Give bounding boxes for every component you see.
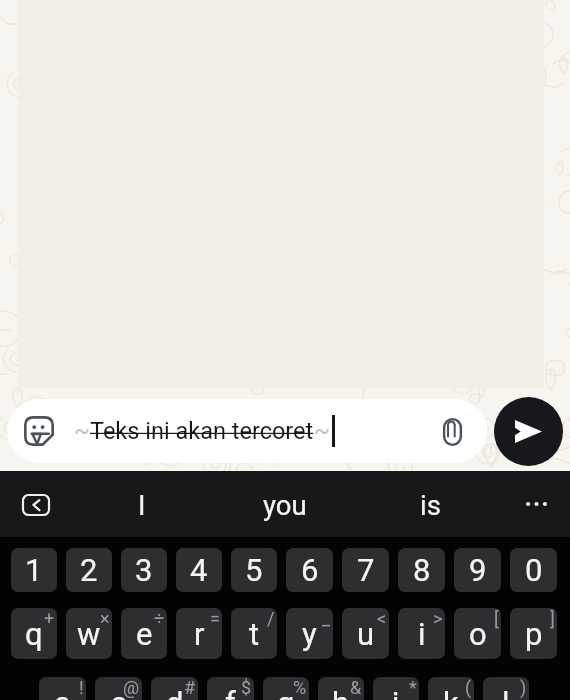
button[interactable]: _ — [286, 608, 333, 659]
button[interactable]: 6 — [286, 548, 333, 592]
staticText: + — [44, 608, 55, 629]
staticText: j — [392, 685, 400, 700]
staticText: 2 — [80, 552, 98, 588]
button[interactable]: = — [176, 608, 222, 659]
staticText: 0 — [525, 552, 543, 588]
button[interactable]: @ — [95, 677, 142, 700]
button[interactable]: 7 — [342, 548, 389, 592]
staticText: 3 — [135, 552, 153, 588]
staticText: 8 — [413, 552, 431, 588]
staticText: a — [54, 685, 71, 700]
button[interactable]: 9 — [454, 548, 501, 592]
staticText: you — [263, 489, 307, 521]
staticText: w — [77, 616, 101, 652]
staticText: * — [409, 677, 417, 698]
button[interactable]: * — [373, 677, 419, 700]
staticText: & — [350, 677, 362, 698]
button[interactable]: 1 — [11, 548, 57, 592]
button[interactable]: ÷ — [121, 608, 167, 659]
staticText: k — [443, 685, 459, 700]
staticText: × — [100, 608, 110, 629]
button[interactable]: More suggestions — [512, 471, 560, 537]
staticText: 9 — [469, 552, 487, 588]
staticText: ~ — [74, 417, 90, 445]
button[interactable]: ] — [510, 608, 557, 659]
button[interactable]: 3 — [121, 548, 167, 592]
staticText: @ — [123, 677, 140, 698]
button[interactable]: $ — [207, 677, 254, 700]
staticText: I — [138, 489, 146, 521]
staticText: 4 — [190, 552, 208, 588]
staticText: # — [184, 677, 196, 698]
staticText: e — [136, 616, 153, 652]
button[interactable]: / — [231, 608, 277, 659]
staticText: 1 — [25, 552, 43, 588]
button[interactable]: × — [66, 608, 112, 659]
button[interactable]: & — [318, 677, 364, 700]
button[interactable]: Attach — [437, 417, 467, 447]
button[interactable]: # — [151, 677, 198, 700]
staticText: ( — [465, 677, 472, 698]
staticText: 7 — [357, 552, 375, 588]
staticText: _ — [322, 608, 331, 629]
button[interactable]: > — [398, 608, 445, 659]
staticText: 6 — [301, 552, 319, 588]
button[interactable]: you — [230, 472, 340, 538]
button[interactable]: + — [11, 608, 57, 659]
staticText: h — [332, 685, 350, 700]
staticText: s — [111, 685, 127, 700]
staticText: ] — [550, 608, 555, 629]
button[interactable]: ! — [39, 677, 86, 700]
button[interactable]: Stickers — [7, 399, 487, 463]
button[interactable]: Send — [494, 397, 563, 466]
staticText: t — [249, 616, 260, 652]
staticText: o — [469, 616, 487, 652]
staticText: p — [525, 616, 543, 652]
staticText: > — [433, 608, 443, 629]
button[interactable]: ( — [428, 677, 474, 700]
staticText: [ — [494, 608, 499, 629]
button[interactable]: % — [263, 677, 309, 700]
staticText: ! — [79, 677, 84, 698]
button[interactable]: I — [87, 472, 197, 538]
staticText: % — [293, 677, 307, 698]
button[interactable]: 8 — [398, 548, 445, 592]
button[interactable]: < — [342, 608, 389, 659]
button[interactable]: 4 — [176, 548, 222, 592]
staticText: f — [225, 685, 236, 700]
staticText: q — [25, 616, 43, 652]
staticText: i — [418, 616, 426, 652]
staticText: r — [194, 616, 205, 652]
staticText: is — [420, 489, 441, 521]
staticText: ÷ — [154, 608, 165, 629]
button[interactable]: Collapse suggestions — [15, 487, 56, 523]
staticText: < — [377, 608, 387, 629]
button[interactable]: Stickers — [24, 416, 54, 446]
button[interactable]: is — [375, 472, 485, 538]
button[interactable]: 0 — [510, 548, 557, 592]
staticText: u — [357, 616, 375, 652]
staticText: Teks ini akan tercoret — [90, 417, 314, 445]
button[interactable]: 2 — [66, 548, 112, 592]
staticText: ~ — [314, 417, 330, 445]
staticText: l — [502, 685, 510, 700]
staticText: y — [302, 616, 317, 652]
staticText: / — [267, 608, 275, 629]
staticText: 5 — [245, 552, 263, 588]
staticText: g — [277, 685, 295, 700]
staticText: = — [210, 608, 220, 629]
staticText: d — [166, 685, 184, 700]
button[interactable]: [ — [454, 608, 501, 659]
button[interactable]: ) — [483, 677, 529, 700]
button[interactable]: 5 — [231, 548, 277, 592]
staticText: $ — [241, 677, 252, 698]
staticText: ) — [520, 677, 527, 698]
